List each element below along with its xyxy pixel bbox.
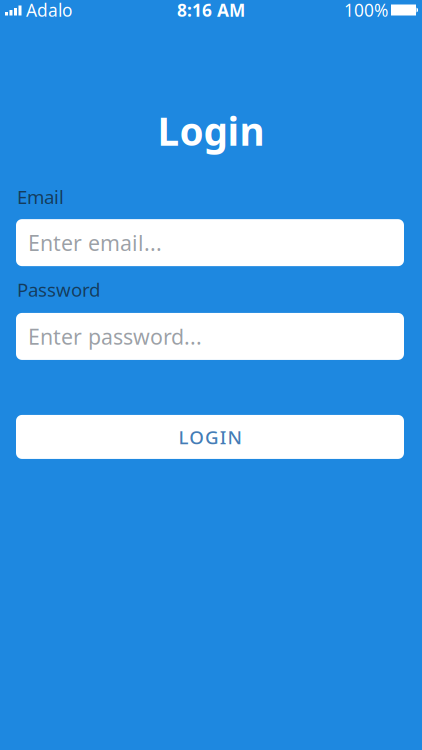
staticText: 8:16 AM bbox=[177, 0, 245, 21]
staticText: Login bbox=[157, 105, 264, 156]
staticText: Password bbox=[17, 277, 100, 302]
staticText: Adalo bbox=[26, 0, 72, 21]
staticText: Email bbox=[17, 184, 64, 209]
staticText: LOGIN bbox=[178, 424, 242, 449]
button[interactable]: Enter password... bbox=[16, 313, 404, 360]
staticText: 100% bbox=[344, 0, 388, 21]
staticText: Enter email... bbox=[28, 228, 162, 257]
button[interactable]: LOGIN bbox=[16, 415, 404, 459]
staticText: Enter password... bbox=[28, 322, 202, 351]
button[interactable]: Enter email... bbox=[16, 219, 404, 266]
